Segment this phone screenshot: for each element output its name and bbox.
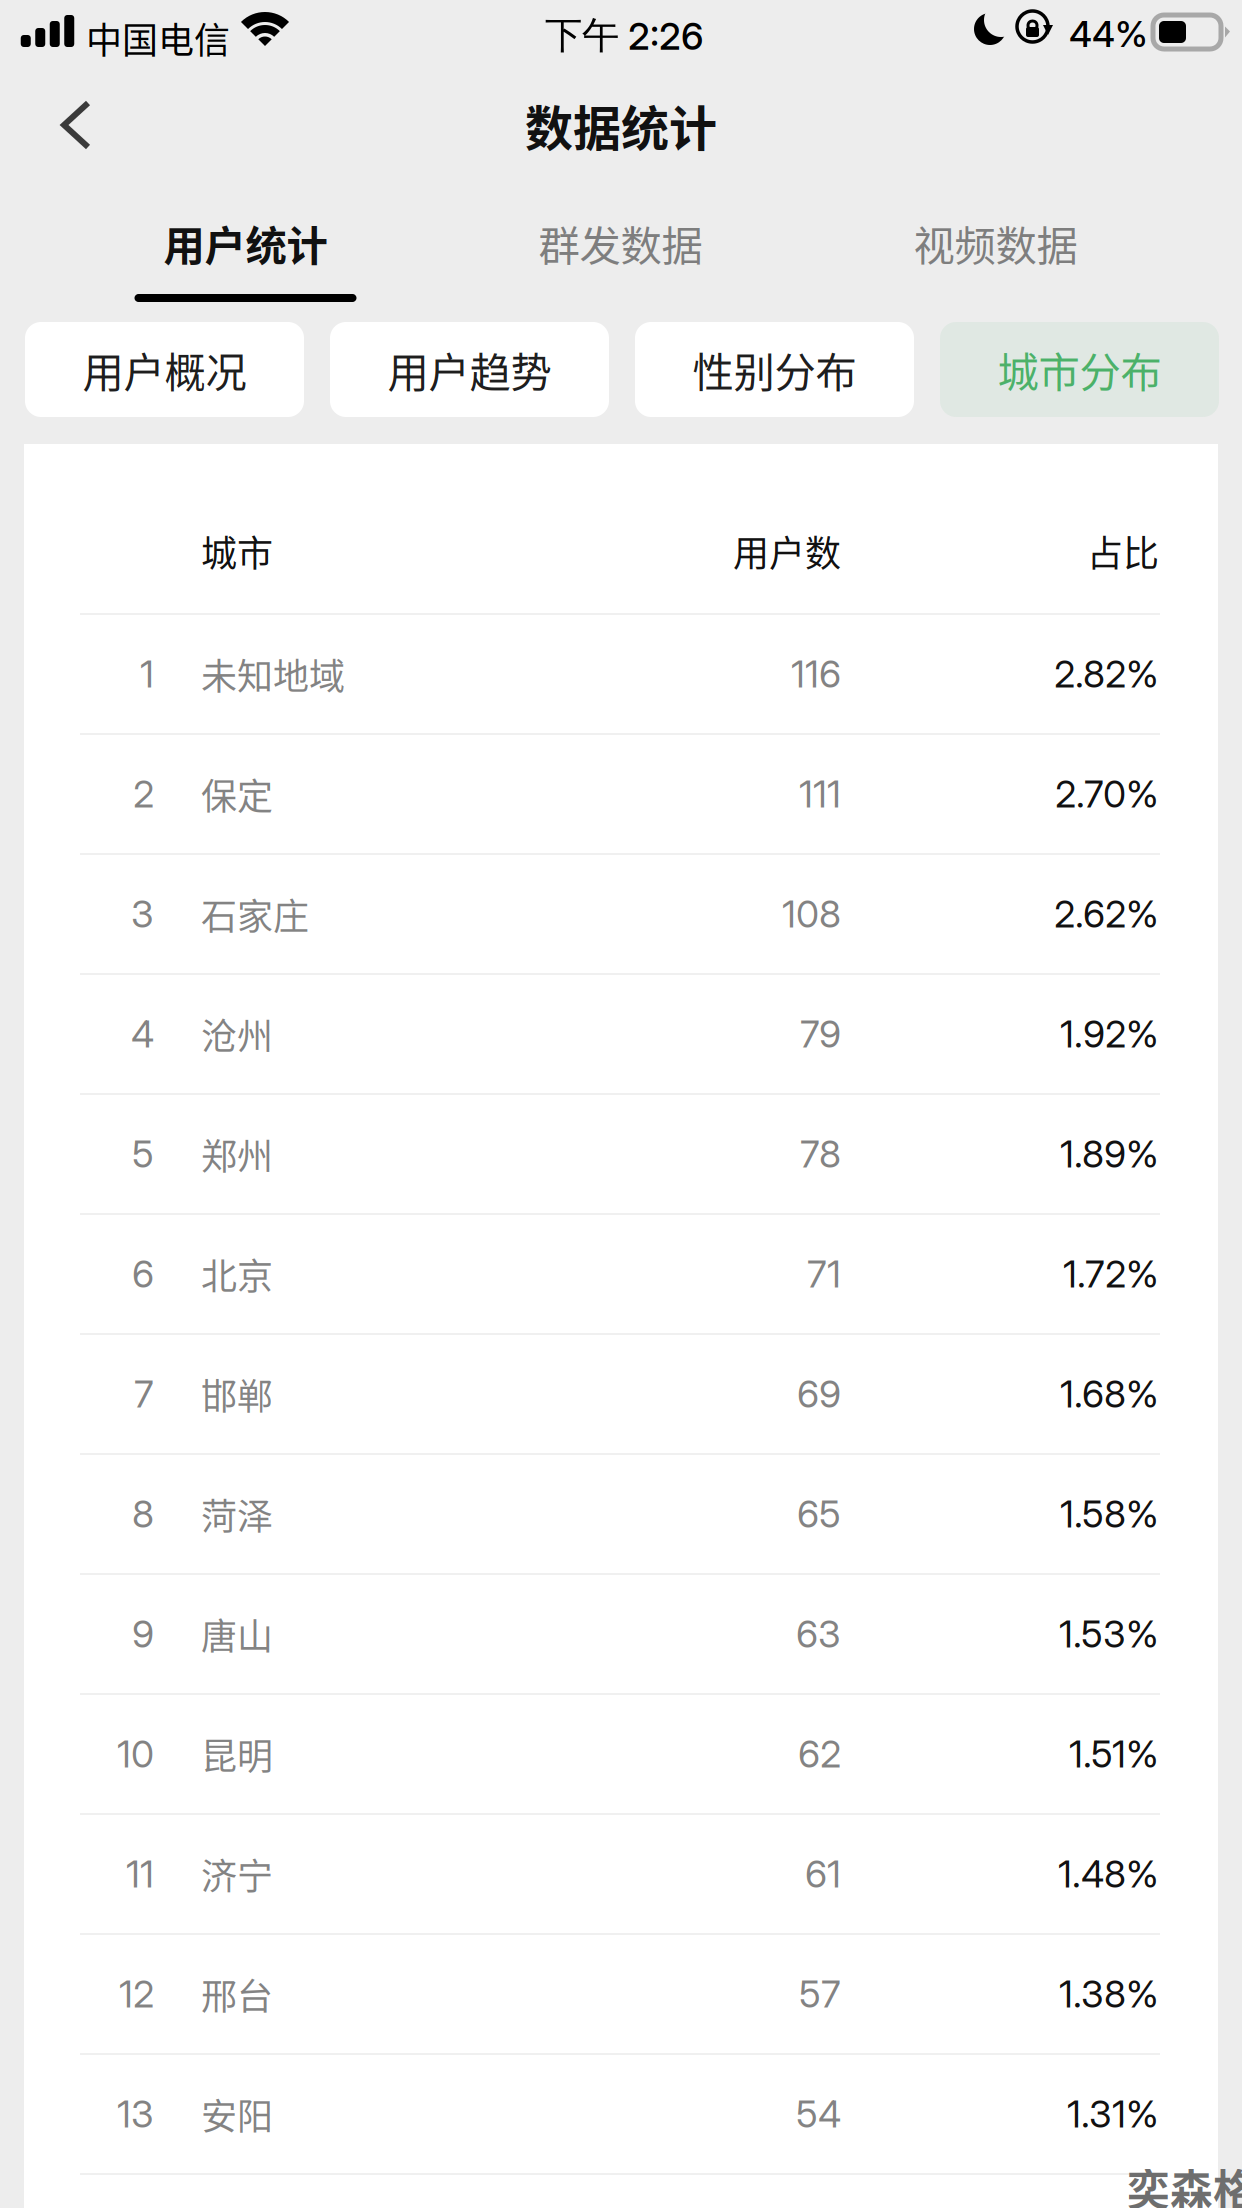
button[interactable]: 视频数据 [808,190,1183,312]
staticText: 6 [132,1251,154,1297]
button[interactable]: 性别分布 [635,322,914,417]
staticText: 78 [800,1131,841,1177]
staticText: 用户统计 [163,213,327,273]
staticText: 群发数据 [538,213,702,273]
button[interactable]: Back [0,70,147,190]
staticText: 9 [132,1611,154,1657]
staticText: 安阳 [201,2088,273,2140]
staticText: 济宁 [201,1848,273,1900]
staticText: 63 [796,1611,841,1657]
staticText: 11 [126,1851,154,1897]
button[interactable]: 用户统计 [58,190,433,312]
staticText: 昆明 [201,1728,273,1780]
staticText: 郑州 [201,1128,273,1180]
staticText: 唐山 [201,1608,273,1660]
staticText: 61 [805,1851,841,1897]
staticText: 1.68% [1060,1371,1159,1417]
staticText: 1.51% [1069,1731,1159,1777]
staticText: 44% [1069,12,1148,56]
staticText: 2 [133,771,154,817]
staticText: 奕森格 [1127,2156,1242,2208]
staticText: 108 [782,891,841,937]
staticText: 2.62% [1054,891,1159,937]
staticText: 62 [798,1731,841,1777]
staticText: 116 [791,651,841,697]
button[interactable]: 用户趋势 [330,322,609,417]
staticText: 1.89% [1060,1131,1159,1177]
staticText: 79 [800,1011,841,1057]
staticText: 111 [799,771,841,817]
staticText: 占比 [1087,525,1159,577]
staticText: 12 [119,1971,154,2017]
staticText: 10 [117,1731,154,1777]
staticText: 城市 [201,525,273,577]
staticText: 8 [132,1491,154,1537]
staticText: 1.92% [1060,1011,1159,1057]
staticText: 65 [797,1491,841,1537]
staticText: 中国电信 [86,12,230,64]
staticText: 3 [131,891,154,937]
staticText: 5 [132,1131,154,1177]
staticText: 未知地域 [201,648,345,700]
staticText: 用户数 [733,525,841,577]
staticText: 1.48% [1058,1851,1159,1897]
staticText: 1.72% [1063,1251,1159,1297]
staticText: 用户概况 [82,340,246,399]
staticText: 保定 [201,768,273,820]
staticText: 下午 2:26 [545,12,704,59]
staticText: 邯郸 [201,1368,273,1420]
staticText: 1.53% [1059,1611,1159,1657]
button[interactable]: 用户概况 [25,322,304,417]
staticText: 4 [131,1011,154,1057]
staticText: 2.82% [1054,651,1159,697]
staticText: 13 [117,2091,154,2137]
staticText: 69 [797,1371,841,1417]
staticText: 性别分布 [692,340,856,399]
staticText: 1.38% [1059,1971,1159,2017]
staticText: 沧州 [201,1008,273,1060]
staticText: 石家庄 [201,888,309,940]
staticText: 邢台 [201,1968,273,2020]
button[interactable]: 城市分布 [940,322,1219,417]
staticText: 用户趋势 [387,340,551,399]
staticText: 城市分布 [997,340,1161,399]
staticText: 1 [140,651,154,697]
staticText: 57 [799,1971,841,2017]
staticText: 菏泽 [201,1488,273,1540]
staticText: 1.58% [1060,1491,1159,1537]
button[interactable]: 群发数据 [433,190,808,312]
staticText: 数据统计 [525,90,717,160]
staticText: 1.31% [1067,2091,1159,2137]
staticText: 71 [807,1251,841,1297]
staticText: 54 [796,2091,841,2137]
staticText: 北京 [201,1248,273,1300]
staticText: 7 [134,1371,154,1417]
staticText: 2.70% [1055,771,1159,817]
staticText: 视频数据 [913,213,1077,273]
